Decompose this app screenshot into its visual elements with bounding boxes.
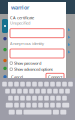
staticText: Connect	[48, 74, 62, 79]
staticText: Show password	[14, 60, 41, 66]
button[interactable]: Cancel	[10, 73, 24, 80]
button[interactable]: Connect	[46, 73, 64, 80]
button[interactable]: Wi-Fi settings	[2, 19, 8, 33]
staticText: Cancel	[11, 74, 23, 79]
staticText: Unspecified	[10, 20, 30, 26]
staticText: warrior	[11, 4, 29, 11]
staticText: Anonymous identity	[10, 41, 44, 46]
staticText: Show advanced options	[14, 66, 53, 72]
button[interactable]: Show advanced options	[8, 66, 66, 72]
staticText: CA certificate	[10, 15, 34, 20]
button[interactable]: Show password	[8, 60, 66, 66]
